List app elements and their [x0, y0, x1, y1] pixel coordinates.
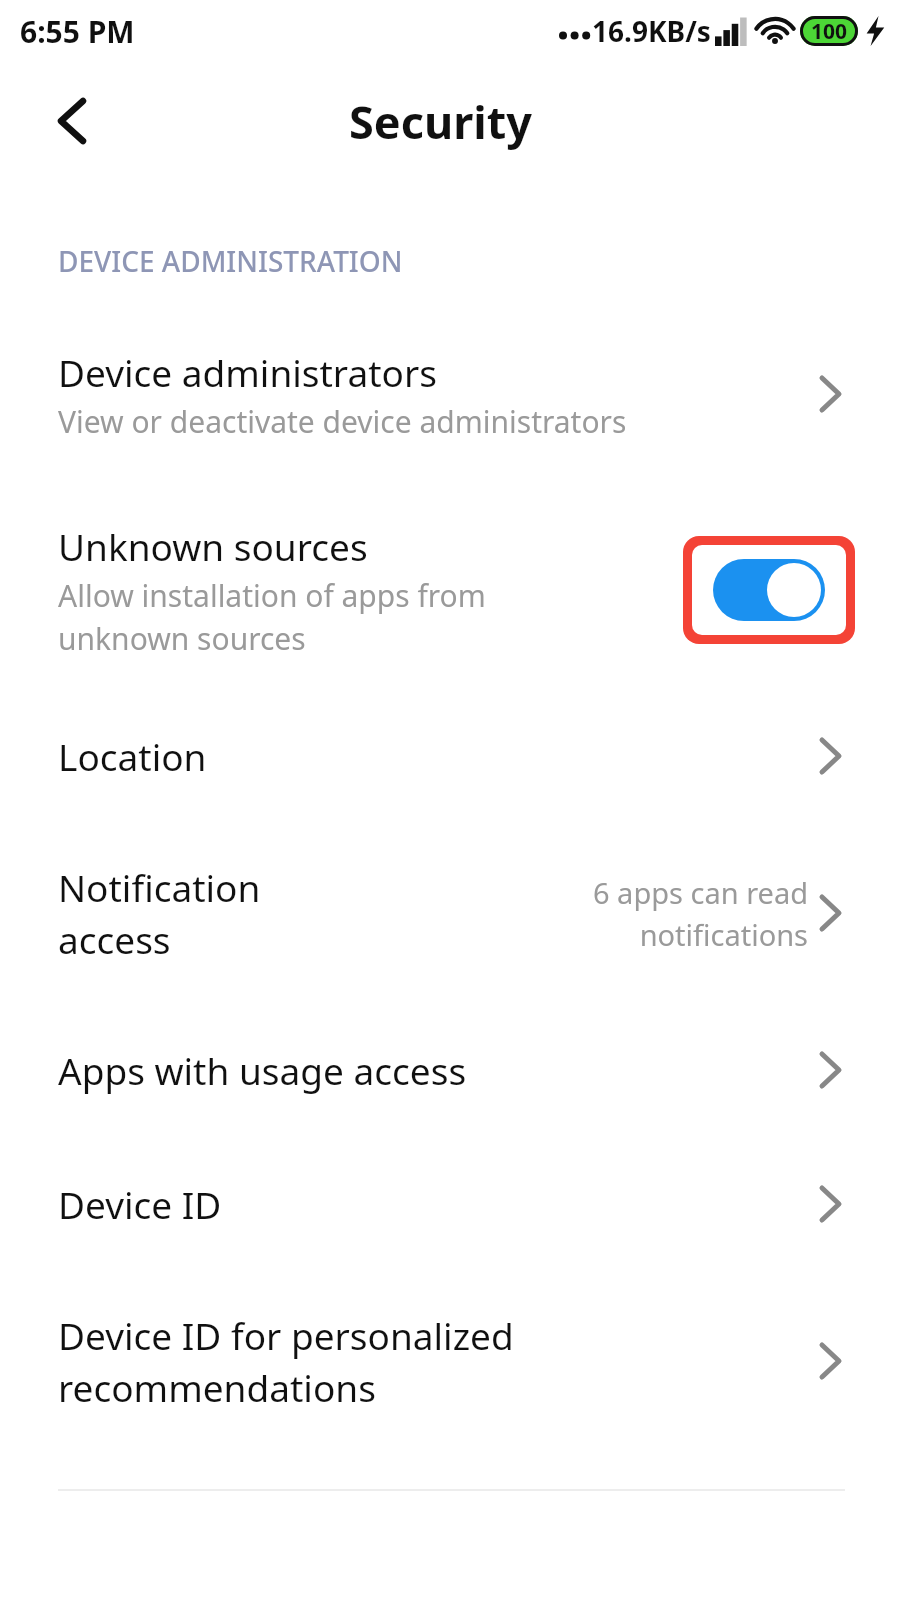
staticText: Notification access [58, 862, 358, 965]
button[interactable]: Apps with usage access [0, 1031, 900, 1109]
staticText: Location [58, 731, 207, 781]
staticText: 6 apps can read notifications [518, 873, 808, 954]
staticText: DEVICE ADMINISTRATION [58, 242, 403, 280]
staticText: 100 [811, 17, 848, 46]
staticText: 16.9KB/s [592, 12, 711, 50]
staticText: Device ID [58, 1179, 222, 1229]
button[interactable]: Device administrators [0, 333, 900, 455]
staticText: Unknown sources [58, 521, 368, 571]
button[interactable]: Location [0, 717, 900, 795]
staticText: Security [349, 91, 532, 152]
button[interactable]: Device ID for personalized recommendatio… [0, 1299, 900, 1423]
button[interactable]: Unknown sources [0, 505, 900, 675]
staticText: 6:55 PM [20, 11, 135, 52]
staticText: Device administrators [58, 347, 437, 397]
staticText: Apps with usage access [58, 1045, 467, 1095]
button[interactable]: Device ID [0, 1165, 900, 1243]
staticText: Device ID for personalized recommendatio… [58, 1310, 598, 1413]
button[interactable]: Back [30, 79, 114, 163]
other: Unknown sources toggle [692, 545, 846, 635]
staticText: View or deactivate device administrators [58, 401, 627, 442]
button[interactable]: Notification access [0, 851, 900, 975]
staticText: Allow installation of apps from unknown … [58, 575, 588, 659]
